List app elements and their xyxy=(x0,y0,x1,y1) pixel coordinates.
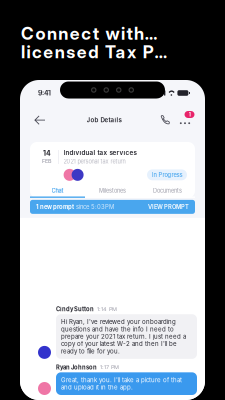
staticText: since 5:03PM xyxy=(74,203,114,210)
staticText: 1:17 PM xyxy=(100,364,119,371)
staticText: 1:14 PM xyxy=(97,306,117,312)
staticText: 14 xyxy=(43,149,51,157)
button[interactable]: Chat xyxy=(30,185,85,198)
staticText: Cindy Sutton xyxy=(56,306,94,313)
staticText: VIEW PROMPT xyxy=(148,203,189,210)
button[interactable]: Call xyxy=(156,109,174,131)
staticText: Documents xyxy=(153,187,182,194)
staticText: Job Details xyxy=(86,116,121,124)
button[interactable]: Milestones xyxy=(85,185,140,198)
staticText: Great, thank you. I'll take a picture of… xyxy=(61,376,182,391)
staticText: 1 new prompt xyxy=(36,203,74,210)
staticText: 2021 personal tax return xyxy=(64,158,126,165)
staticText: Milestones xyxy=(99,187,126,194)
staticText: Hi Ryan, I've reviewed your onboarding q… xyxy=(61,318,186,355)
staticText: 9:41 xyxy=(38,89,51,97)
button[interactable]: Back xyxy=(28,109,52,131)
staticText: In Progress xyxy=(151,171,182,178)
staticText: 1 xyxy=(188,111,190,118)
button[interactable]: 1 new prompt xyxy=(30,200,195,214)
staticText: Individual tax services xyxy=(64,149,137,157)
staticText: Ryan Johnson xyxy=(56,364,97,371)
button[interactable]: More options xyxy=(174,109,196,131)
staticText: licensed Tax Pro xyxy=(21,41,173,62)
staticText: FEB xyxy=(42,158,52,164)
button[interactable]: Documents xyxy=(140,185,195,198)
staticText: Connect with a xyxy=(21,23,161,44)
staticText: Chat xyxy=(51,187,63,194)
